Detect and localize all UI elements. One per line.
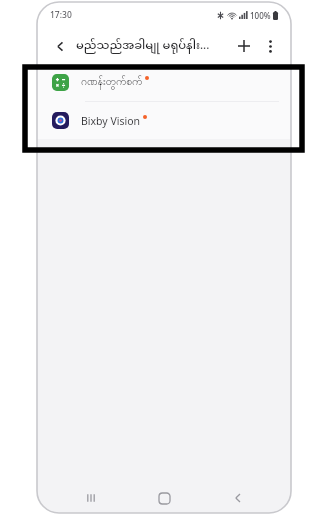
staticText: Bixby Vision [81, 114, 141, 128]
button[interactable]: Back [218, 484, 258, 512]
staticText: 100% [250, 10, 271, 21]
button[interactable]: Back [47, 33, 73, 59]
staticText: ဂဏန်းတွက်စက် [81, 75, 143, 90]
staticText: မည်သည်အခါမျု မရုပ်နါး... [76, 34, 210, 59]
button[interactable]: More options [257, 33, 283, 59]
staticText: 17:30 [50, 9, 72, 21]
button[interactable]: Recents [71, 484, 111, 512]
button[interactable]: Home [144, 484, 184, 512]
button[interactable]: ဂဏန်းတွက်စက် [37, 64, 291, 101]
button[interactable]: Add [231, 33, 257, 59]
button[interactable]: Bixby Vision [37, 102, 291, 139]
